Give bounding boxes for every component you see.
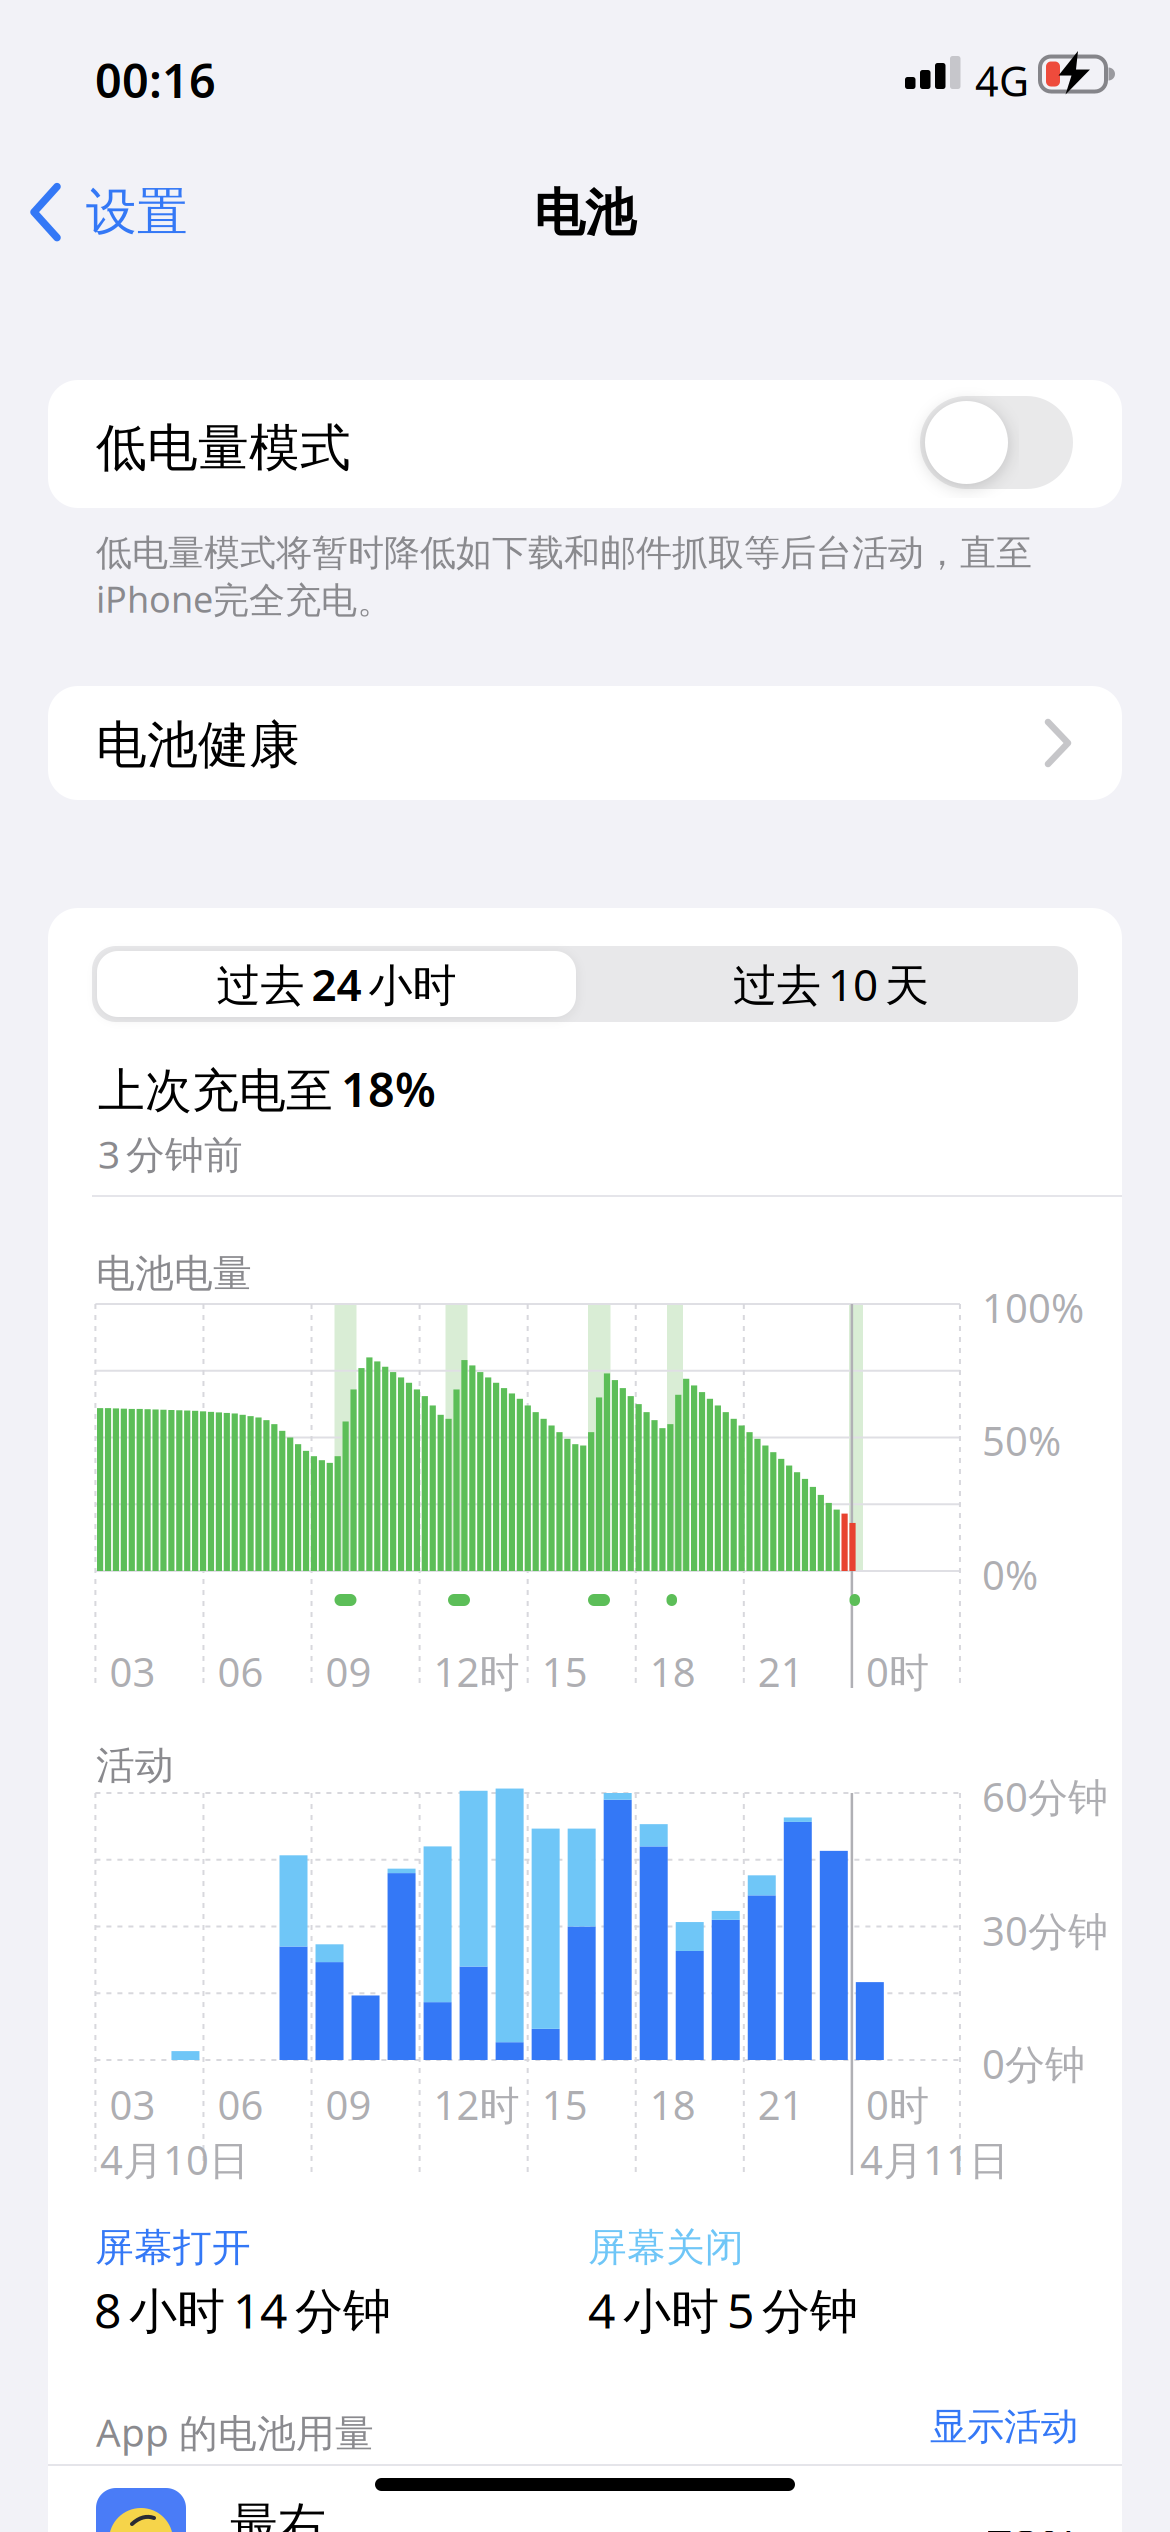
staticText: 4月10日 <box>100 2133 249 2186</box>
staticText: 屏幕关闭 <box>588 2224 744 2271</box>
staticText: 3 分钟前 <box>98 1128 243 1179</box>
button[interactable]: 最右 <box>96 2488 1122 2532</box>
staticText: 过去 24 小时 <box>216 955 456 1013</box>
staticText: 21 <box>758 2078 804 2131</box>
staticText: 最右 <box>230 2496 326 2532</box>
button[interactable]: 过去 24 小时 <box>97 951 576 1017</box>
staticText: App 的电池用量 <box>96 2406 374 2457</box>
button[interactable]: 设置 <box>30 181 188 243</box>
staticText: 电池 <box>534 182 636 244</box>
staticText: 活动 <box>96 1742 174 1789</box>
staticText: iPhone完全充电。 <box>96 575 393 623</box>
staticText: 12时 <box>434 2078 520 2131</box>
staticText: 低电量模式将暂时降低如下载和邮件抓取等后台活动，直至 <box>96 531 1032 575</box>
staticText: 设置 <box>86 181 188 243</box>
staticText: 8 小时 14 分钟 <box>94 2278 391 2342</box>
staticText: 4 小时 5 分钟 <box>588 2278 858 2342</box>
staticText: 30分钟 <box>982 1904 1108 1957</box>
staticText: 0时 <box>866 2078 929 2131</box>
staticText: 50% <box>982 1414 1061 1467</box>
staticText: 屏幕打开 <box>95 2224 251 2271</box>
button[interactable]: 电池健康 <box>48 686 1122 800</box>
staticText: 09 <box>325 1645 371 1698</box>
staticText: 03 <box>109 1645 155 1698</box>
staticText: 03 <box>109 2078 155 2131</box>
button[interactable]: 过去 10 天 <box>586 949 1076 1019</box>
button[interactable]: 显示活动 <box>930 2404 1078 2450</box>
staticText: 15 <box>542 1645 588 1698</box>
staticText: 0% <box>982 1548 1038 1601</box>
staticText: 电池电量 <box>96 1250 252 1297</box>
staticText: 0时 <box>866 1645 929 1698</box>
staticText: 18 <box>650 2078 696 2131</box>
staticText: 73% <box>986 2516 1079 2532</box>
staticText: 0分钟 <box>982 2037 1085 2090</box>
staticText: 00:16 <box>95 49 216 111</box>
staticText: 09 <box>325 2078 371 2131</box>
staticText: 100% <box>982 1281 1084 1334</box>
staticText: 4月11日 <box>860 2133 1009 2186</box>
staticText: 21 <box>758 1645 804 1698</box>
staticText: 上次充电至 18% <box>98 1058 436 1120</box>
staticText: 06 <box>217 2078 263 2131</box>
staticText: 12时 <box>434 1645 520 1698</box>
button[interactable]: 低电量模式 <box>920 396 1073 489</box>
staticText: 18 <box>650 1645 696 1698</box>
staticText: 4G <box>975 53 1029 108</box>
staticText: 低电量模式 <box>96 417 351 479</box>
staticText: 60分钟 <box>982 1770 1108 1823</box>
staticText: 电池健康 <box>96 714 300 776</box>
staticText: 06 <box>217 1645 263 1698</box>
staticText: 过去 10 天 <box>733 955 929 1013</box>
staticText: 显示活动 <box>930 2404 1078 2450</box>
staticText: 15 <box>542 2078 588 2131</box>
